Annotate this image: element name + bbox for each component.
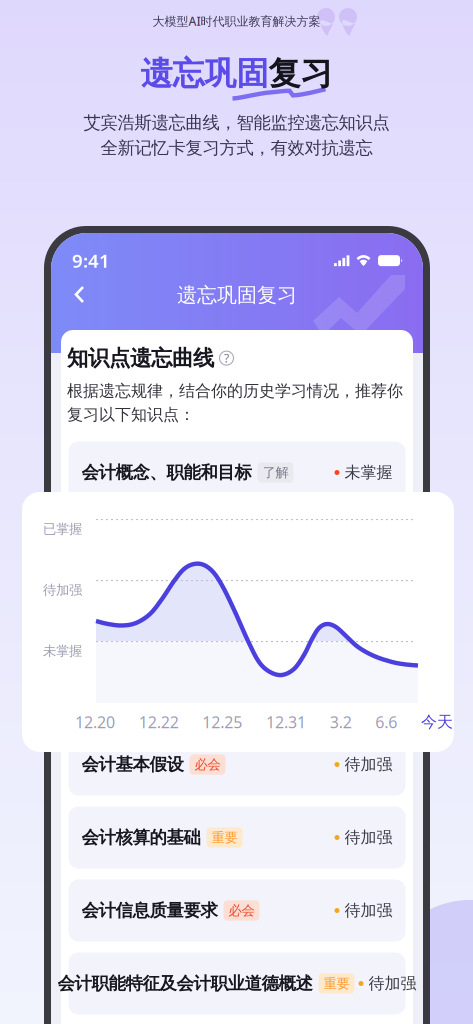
- button[interactable]: 会计职能特征及会计职业道德概述: [68, 952, 405, 1014]
- staticText: 6.6: [375, 711, 397, 733]
- staticText: 复习: [268, 54, 332, 93]
- button[interactable]: 会计基本假设: [68, 733, 405, 795]
- staticText: 了解: [262, 464, 288, 481]
- staticText: 未掌握: [344, 463, 392, 482]
- staticText: 9:41: [72, 248, 110, 273]
- staticText: 12.22: [139, 711, 179, 733]
- staticText: 今天: [421, 712, 453, 732]
- button[interactable]: 会计信息质量要求: [68, 879, 405, 941]
- staticText: 重要: [211, 829, 237, 846]
- staticText: 知识点遗忘曲线: [67, 345, 214, 371]
- staticText: 3.2: [330, 711, 352, 733]
- staticText: 待加强: [368, 974, 416, 993]
- staticText: 12.31: [266, 711, 306, 733]
- staticText: 待加强: [344, 828, 392, 847]
- staticText: 重要: [323, 975, 349, 992]
- staticText: 必会: [194, 756, 220, 773]
- staticText: 复习以下知识点：: [67, 405, 195, 425]
- staticText: ?: [224, 350, 229, 366]
- button[interactable]: 会计计量属性: [68, 587, 405, 649]
- staticText: 已掌握: [43, 521, 82, 537]
- staticText: 会计基本假设: [81, 754, 183, 775]
- staticText: 待加强: [43, 582, 82, 598]
- staticText: 会计职能特征及会计职业道德概述: [57, 973, 312, 994]
- staticText: 艾宾浩斯遗忘曲线，智能监控遗忘知识点: [83, 112, 389, 133]
- button[interactable]: 会计等式与记账方法: [68, 660, 405, 722]
- staticText: 会计核算的基础: [81, 827, 200, 848]
- staticText: 遗忘巩固: [140, 54, 268, 93]
- button[interactable]: 会计概念、职能和目标: [68, 441, 405, 503]
- button[interactable]: 返回: [63, 278, 97, 312]
- staticText: 未掌握: [43, 643, 82, 659]
- staticText: 待加强: [344, 755, 392, 774]
- staticText: 会计概念、职能和目标: [81, 462, 251, 483]
- button[interactable]: 会计核算的基础: [68, 806, 405, 868]
- staticText: 待加强: [344, 901, 392, 920]
- staticText: 全新记忆卡复习方式，有效对抗遗忘: [100, 137, 372, 159]
- staticText: 会计信息质量要求: [81, 900, 217, 921]
- staticText: 必会: [228, 902, 254, 919]
- button[interactable]: 说明: [219, 351, 234, 366]
- button[interactable]: 会计要素及其确认: [68, 514, 405, 576]
- staticText: 遗忘巩固复习: [177, 283, 297, 307]
- staticText: 12.20: [75, 711, 115, 733]
- staticText: 12.25: [202, 711, 242, 733]
- staticText: 根据遗忘规律，结合你的历史学习情况，推荐你: [67, 381, 403, 401]
- staticText: 大模型AI时代职业教育解决方案: [152, 13, 320, 29]
- staticText: 会计计量属性: [81, 608, 183, 629]
